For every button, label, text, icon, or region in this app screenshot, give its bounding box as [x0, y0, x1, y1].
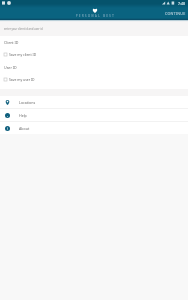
staticText: enter your client id and user id — [4, 27, 43, 31]
staticText: PERSONAL BEST — [76, 14, 116, 18]
button[interactable]: Save my client ID — [0, 49, 188, 60]
button[interactable]: About — [0, 122, 188, 134]
button[interactable]: Locations — [0, 96, 188, 108]
staticText: User ID — [4, 65, 17, 70]
button[interactable]: CONTINUE — [161, 8, 188, 19]
staticText: 7:48 — [178, 1, 186, 6]
staticText: Help — [19, 113, 27, 118]
staticText: About — [19, 126, 30, 131]
staticText: Locations — [19, 100, 36, 105]
staticText: Save my client ID — [9, 52, 37, 57]
button[interactable]: Save my user ID — [0, 74, 188, 85]
button[interactable]: Help — [0, 109, 188, 121]
staticText: Client ID — [4, 40, 19, 45]
button[interactable]: User ID — [0, 60, 188, 74]
staticText: CONTINUE — [165, 11, 186, 16]
staticText: Save my user ID — [9, 77, 35, 82]
button[interactable]: Client ID — [0, 36, 188, 49]
